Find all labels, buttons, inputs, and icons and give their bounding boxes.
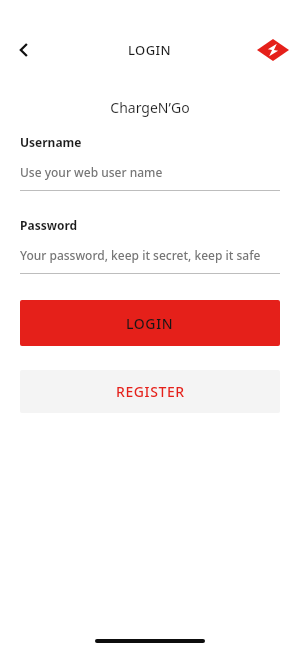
staticText: Password — [20, 217, 78, 233]
staticText: Use your web user name — [20, 164, 163, 180]
button[interactable]: Back — [8, 34, 40, 66]
button[interactable]: ChargeN'Go logo — [256, 33, 290, 67]
staticText: ChargeN’Go — [0, 98, 300, 117]
staticText: LOGIN — [126, 314, 174, 333]
button[interactable]: Your password, keep it secret, keep it s… — [20, 247, 280, 263]
button[interactable]: LOGIN — [20, 300, 280, 346]
staticText: LOGIN — [128, 41, 172, 59]
staticText: REGISTER — [116, 382, 185, 401]
staticText: Your password, keep it secret, keep it s… — [20, 247, 261, 263]
button[interactable]: Use your web user name — [20, 164, 280, 180]
staticText: Username — [20, 134, 82, 150]
button[interactable]: REGISTER — [20, 370, 280, 413]
